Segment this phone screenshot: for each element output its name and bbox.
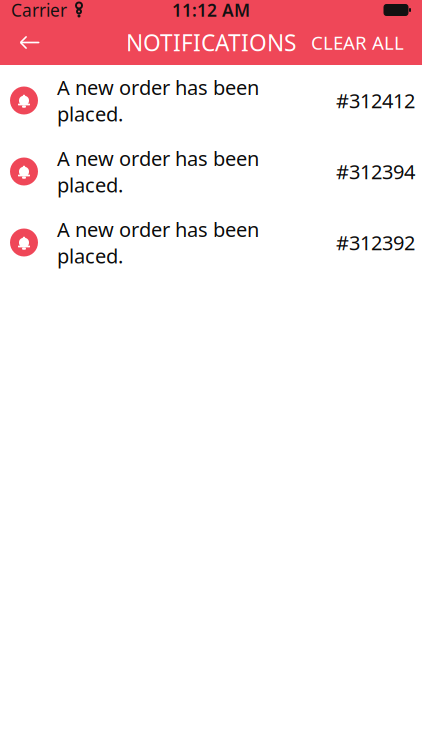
staticText: NOTIFICATIONS: [126, 27, 296, 57]
button[interactable]: A new order has been placed.: [0, 136, 422, 207]
staticText: A new order has been placed.: [57, 145, 259, 198]
staticText: CLEAR ALL: [311, 30, 404, 55]
staticText: 11:12 AM: [172, 0, 250, 21]
staticText: Carrier: [11, 0, 67, 21]
staticText: #312412: [336, 87, 415, 114]
staticText: #312394: [336, 158, 415, 185]
button[interactable]: Back: [8, 20, 52, 64]
staticText: A new order has been placed.: [57, 74, 259, 127]
button[interactable]: A new order has been placed.: [0, 65, 422, 136]
button[interactable]: CLEAR ALL: [301, 20, 414, 64]
staticText: A new order has been placed.: [57, 216, 259, 269]
button[interactable]: A new order has been placed.: [0, 207, 422, 278]
staticText: #312392: [336, 229, 415, 256]
